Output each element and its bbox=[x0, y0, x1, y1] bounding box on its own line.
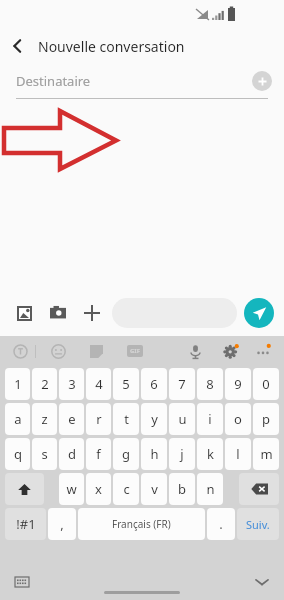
button[interactable]: !#1 bbox=[5, 508, 46, 540]
staticText: s bbox=[41, 445, 48, 463]
staticText: 2 bbox=[41, 375, 49, 393]
button[interactable]: Shift bbox=[5, 473, 44, 505]
staticText: o bbox=[234, 410, 242, 428]
button[interactable]: c bbox=[113, 473, 139, 505]
button[interactable]: p bbox=[253, 403, 279, 435]
button[interactable]: 2 bbox=[32, 368, 57, 400]
button[interactable]: 3 bbox=[59, 368, 84, 400]
button[interactable]: Camera bbox=[44, 299, 72, 327]
staticText: , bbox=[60, 515, 64, 533]
button[interactable]: , bbox=[48, 508, 76, 540]
staticText: 5 bbox=[122, 375, 130, 393]
button[interactable]: m bbox=[253, 438, 279, 470]
button[interactable]: z bbox=[32, 403, 57, 435]
button[interactable]: d bbox=[59, 438, 84, 470]
button[interactable]: Français (FR) bbox=[78, 508, 205, 540]
button[interactable]: 1 bbox=[5, 368, 30, 400]
button[interactable]: u bbox=[169, 403, 195, 435]
button[interactable]: b bbox=[169, 473, 195, 505]
button[interactable]: 0 bbox=[253, 368, 279, 400]
button[interactable]: 6 bbox=[141, 368, 167, 400]
staticText: h bbox=[150, 445, 159, 463]
button[interactable]: Destinataire bbox=[16, 64, 272, 98]
staticText: 1 bbox=[14, 375, 22, 393]
button[interactable]: h bbox=[141, 438, 167, 470]
button[interactable]: Gallery bbox=[10, 299, 38, 327]
staticText: Nouvelle conversation bbox=[38, 37, 185, 56]
staticText: j bbox=[180, 445, 184, 463]
staticText: 0 bbox=[262, 375, 270, 393]
staticText: GIF bbox=[130, 347, 140, 355]
button[interactable]: i bbox=[197, 403, 223, 435]
button[interactable]: o bbox=[225, 403, 251, 435]
button[interactable]: More options bbox=[78, 299, 106, 327]
staticText: b bbox=[178, 480, 186, 498]
staticText: 9 bbox=[234, 375, 242, 393]
button[interactable]: r bbox=[86, 403, 111, 435]
staticText: v bbox=[151, 480, 158, 498]
button[interactable]: 7 bbox=[169, 368, 195, 400]
staticText: e bbox=[68, 410, 76, 428]
staticText: k bbox=[207, 445, 214, 463]
button[interactable]: Send bbox=[244, 298, 274, 328]
button[interactable]: k bbox=[197, 438, 223, 470]
button[interactable]: y bbox=[141, 403, 167, 435]
button[interactable]: . bbox=[207, 508, 235, 540]
button[interactable]: e bbox=[59, 403, 84, 435]
button[interactable]: l bbox=[225, 438, 251, 470]
button[interactable]: s bbox=[32, 438, 57, 470]
button[interactable]: Emoji bbox=[46, 339, 70, 363]
staticText: Français (FR) bbox=[112, 517, 171, 531]
staticText: d bbox=[68, 445, 76, 463]
button[interactable]: Translate bbox=[8, 339, 32, 363]
staticText: a bbox=[14, 410, 22, 428]
button[interactable]: g bbox=[113, 438, 139, 470]
staticText: p bbox=[262, 410, 270, 428]
button[interactable]: j bbox=[169, 438, 195, 470]
staticText: n bbox=[206, 480, 215, 498]
button[interactable]: w bbox=[59, 473, 84, 505]
button[interactable]: f bbox=[86, 438, 111, 470]
staticText: w bbox=[66, 480, 77, 498]
staticText: z bbox=[41, 410, 48, 428]
staticText: y bbox=[151, 410, 158, 428]
button[interactable]: Add recipient bbox=[252, 71, 272, 91]
button[interactable]: Stickers bbox=[84, 339, 108, 363]
button[interactable]: Hide keyboard bbox=[250, 570, 274, 594]
staticText: 7 bbox=[178, 375, 186, 393]
button[interactable]: q bbox=[5, 438, 30, 470]
button[interactable]: 9 bbox=[225, 368, 251, 400]
button[interactable]: Back bbox=[0, 28, 36, 64]
button[interactable]: 8 bbox=[197, 368, 223, 400]
button[interactable]: Backspace bbox=[239, 473, 279, 505]
button[interactable]: Keyboard settings bbox=[218, 338, 244, 364]
staticText: 6 bbox=[150, 375, 158, 393]
staticText: g bbox=[122, 445, 130, 463]
staticText: 8 bbox=[206, 375, 214, 393]
staticText: r bbox=[96, 410, 102, 428]
staticText: !#1 bbox=[16, 515, 36, 533]
button[interactable]: t bbox=[113, 403, 139, 435]
staticText: f bbox=[96, 445, 101, 463]
button[interactable]: 5 bbox=[113, 368, 139, 400]
staticText: 3 bbox=[68, 375, 76, 393]
button[interactable]: v bbox=[141, 473, 167, 505]
button[interactable]: 4 bbox=[86, 368, 111, 400]
staticText: i bbox=[208, 410, 212, 428]
staticText: Suiv. bbox=[246, 517, 270, 532]
button[interactable]: GIF bbox=[122, 338, 148, 364]
button[interactable]: x bbox=[86, 473, 111, 505]
button[interactable]: Switch keyboard bbox=[10, 570, 34, 594]
button[interactable]: Voice input bbox=[182, 338, 208, 364]
button[interactable]: a bbox=[5, 403, 30, 435]
staticText: Destinataire bbox=[16, 72, 252, 90]
staticText: l bbox=[236, 445, 240, 463]
staticText: u bbox=[178, 410, 187, 428]
button[interactable]: More bbox=[250, 338, 276, 364]
staticText: m bbox=[260, 445, 273, 463]
button[interactable]: n bbox=[197, 473, 223, 505]
staticText: . bbox=[219, 515, 223, 533]
staticText: q bbox=[14, 445, 22, 463]
button[interactable]: Suiv. bbox=[237, 508, 279, 540]
